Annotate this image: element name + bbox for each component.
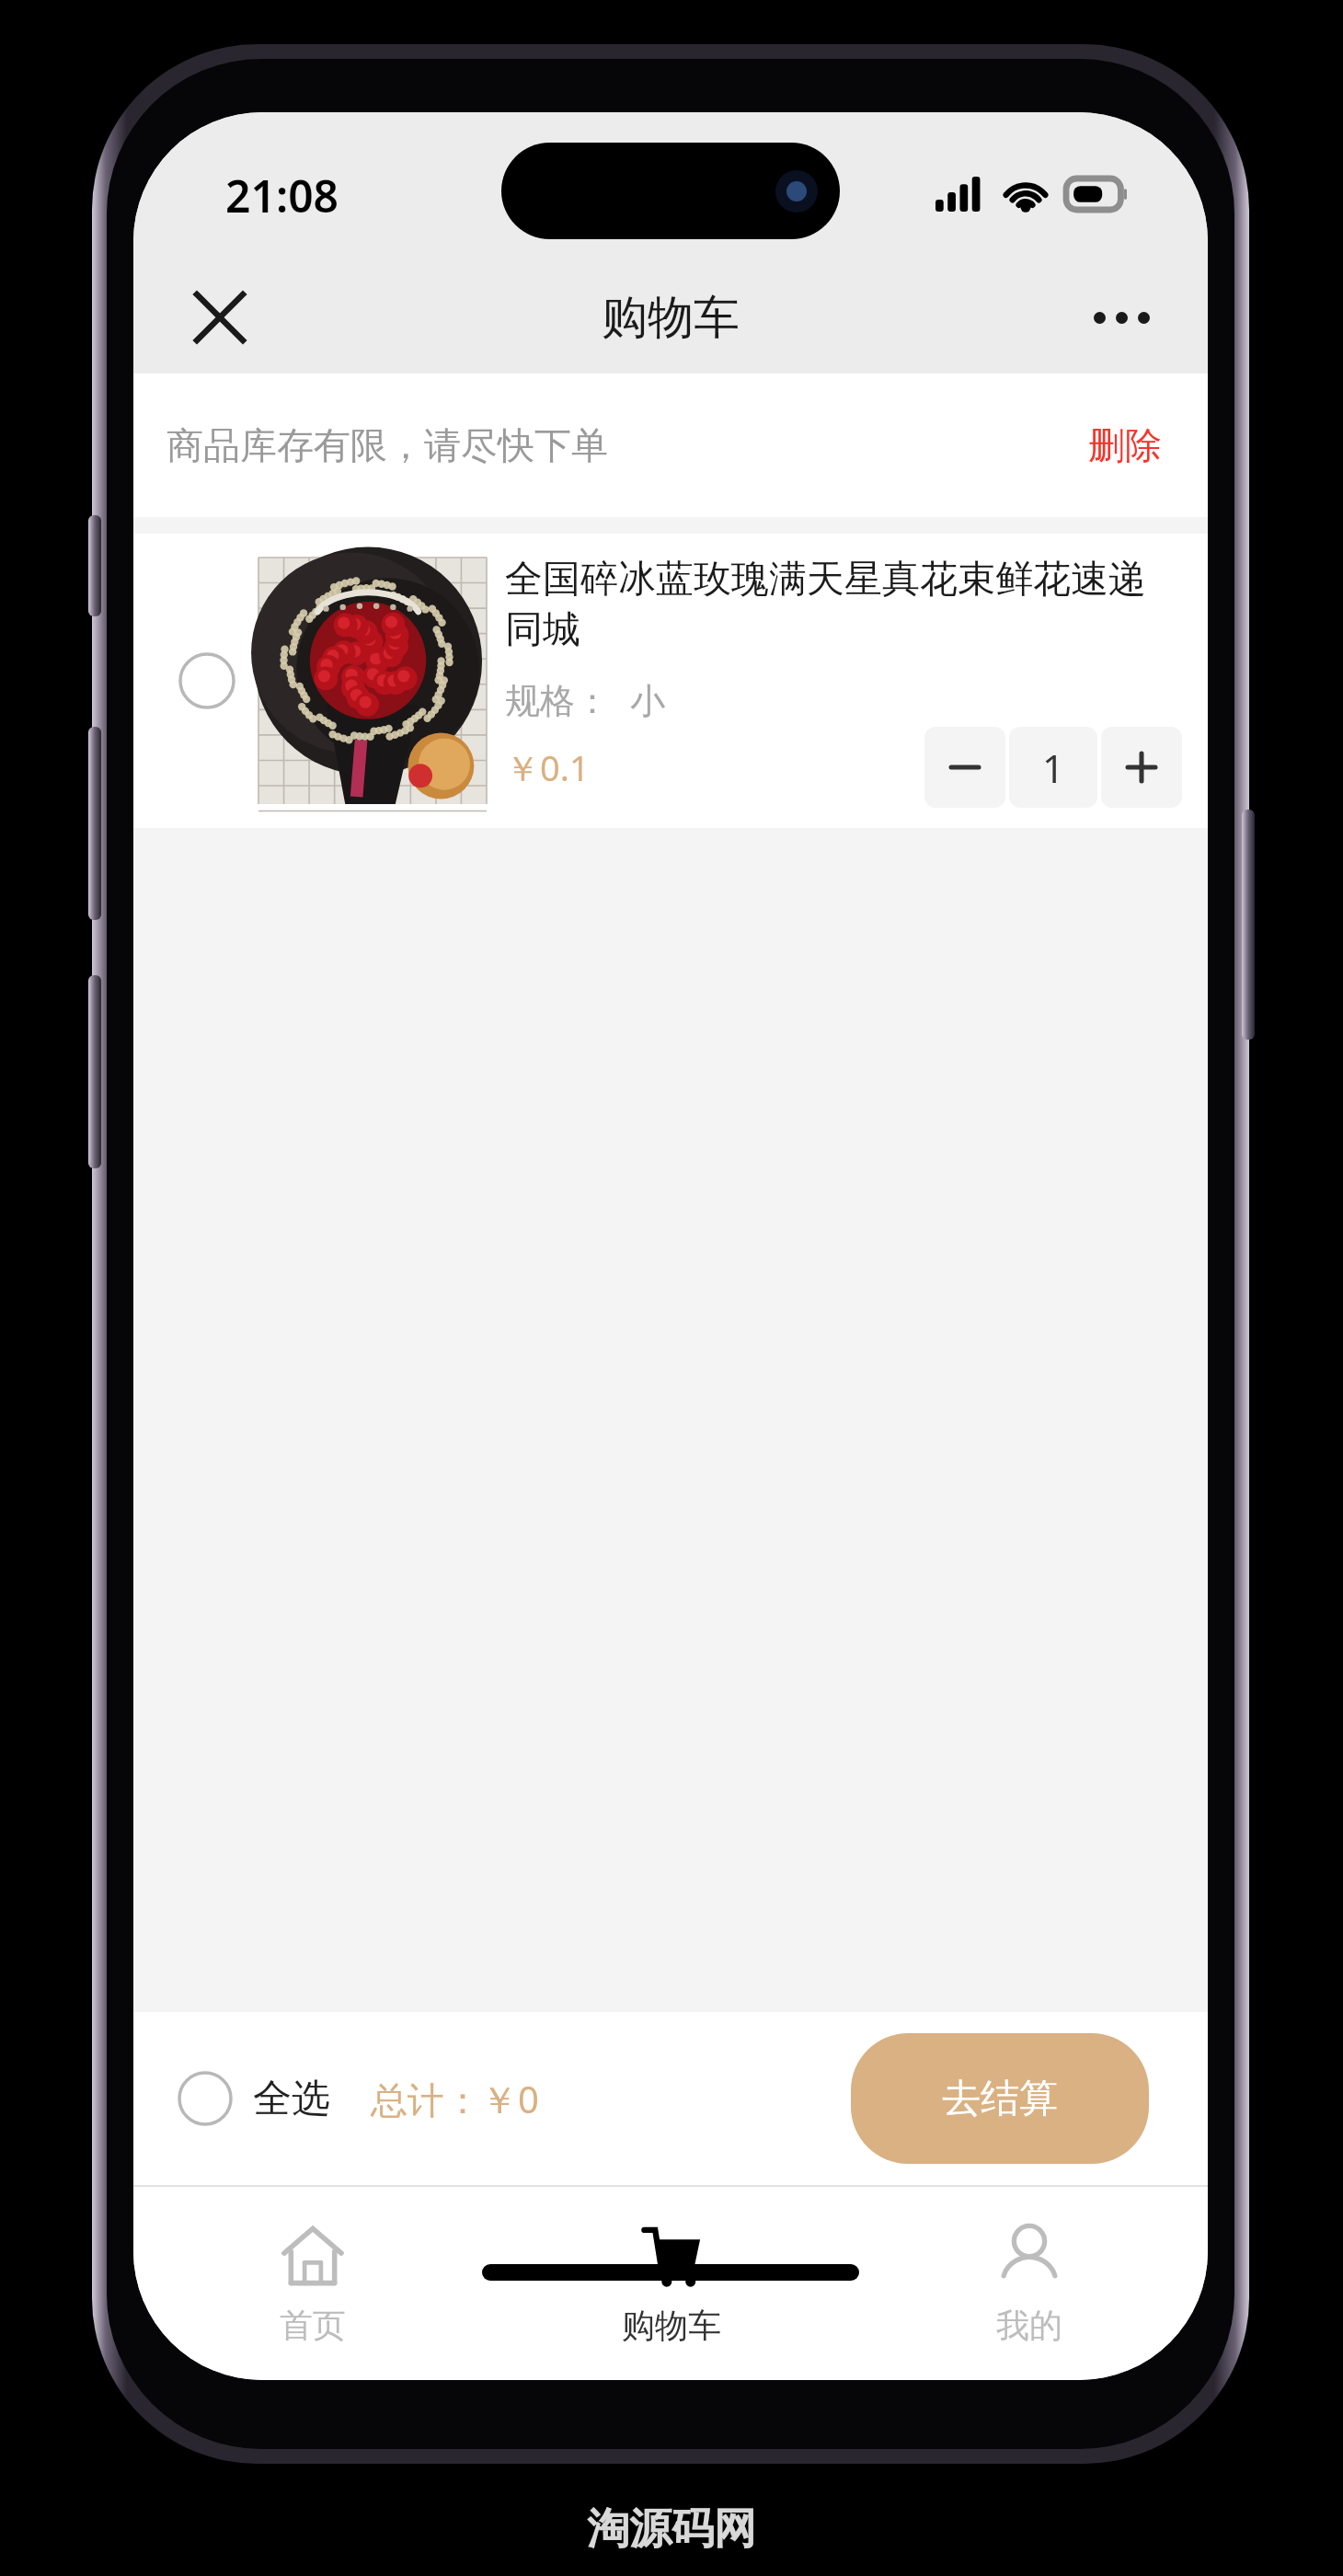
staticText: 1: [1042, 742, 1065, 794]
button[interactable]: 首页: [133, 2187, 492, 2380]
staticText: 21:08: [225, 166, 339, 225]
staticText: 购物车: [602, 289, 740, 347]
button[interactable]: 去结算: [851, 2033, 1149, 2164]
button[interactable]: More options: [1072, 268, 1171, 367]
staticText: 总计：￥0: [371, 2074, 539, 2124]
staticText: 规格：: [505, 679, 610, 723]
staticText: 全选: [253, 2075, 330, 2123]
staticText: 淘源码网: [587, 2502, 756, 2556]
button[interactable]: Select all: [166, 2060, 244, 2137]
button[interactable]: 我的: [850, 2187, 1208, 2380]
staticText: 去结算: [942, 2075, 1058, 2123]
staticText: 购物车: [622, 2305, 721, 2346]
staticText: 首页: [280, 2305, 346, 2346]
button[interactable]: 购物车: [492, 2187, 850, 2380]
button[interactable]: Increase quantity: [1101, 727, 1182, 808]
staticText: 小: [630, 679, 665, 723]
staticText: 商品库存有限，请尽快下单: [166, 422, 608, 468]
staticText: ￥0.1: [505, 743, 590, 791]
button[interactable]: Select item: [168, 642, 246, 719]
button[interactable]: Decrease quantity: [924, 727, 1005, 808]
button[interactable]: Select item: [133, 534, 1208, 828]
staticText: 删除: [1088, 422, 1162, 468]
staticText: 全国碎冰蓝玫瑰满天星真花束鲜花速递同城: [505, 556, 1182, 653]
button[interactable]: 删除: [1075, 409, 1175, 481]
staticText: 我的: [996, 2305, 1062, 2346]
button[interactable]: Close: [170, 268, 270, 367]
